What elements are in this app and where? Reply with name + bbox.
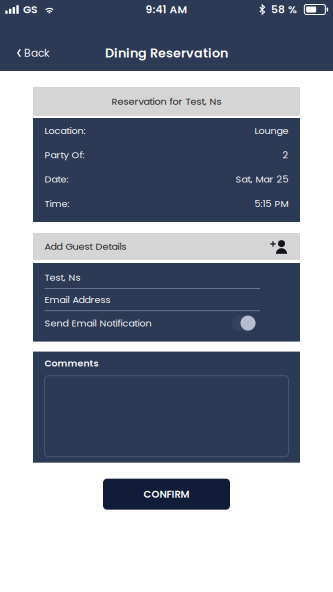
staticText: Email Address <box>44 293 110 306</box>
staticText: Party Of: <box>44 148 84 162</box>
staticText: Date: <box>44 172 68 186</box>
staticText: Add Guest Details <box>44 240 126 253</box>
staticText: Sat, Mar 25 <box>235 172 288 186</box>
staticText: Back <box>24 45 49 60</box>
staticText: Send Email Notification <box>44 316 151 330</box>
staticText: Time: <box>44 197 69 210</box>
staticText: Test, Ns <box>44 271 80 284</box>
button[interactable]: CONFIRM <box>103 479 230 510</box>
staticText: Comments <box>44 357 98 370</box>
staticText: 58 % <box>271 2 297 17</box>
staticText: Dining Reservation <box>105 44 228 62</box>
button[interactable]: Add guest <box>269 238 300 255</box>
button[interactable]: Send Email Notification <box>232 315 256 331</box>
staticText: GS <box>23 2 37 17</box>
staticText: Lounge <box>254 124 288 137</box>
staticText: 2 <box>282 148 288 162</box>
staticText: 5:15 PM <box>254 197 288 210</box>
staticText: Location: <box>44 124 85 137</box>
button[interactable]: Back <box>0 23 61 67</box>
staticText: 9:41 AM <box>145 2 187 17</box>
staticText: CONFIRM <box>143 487 189 501</box>
staticText: Reservation for Test, Ns <box>111 95 221 108</box>
